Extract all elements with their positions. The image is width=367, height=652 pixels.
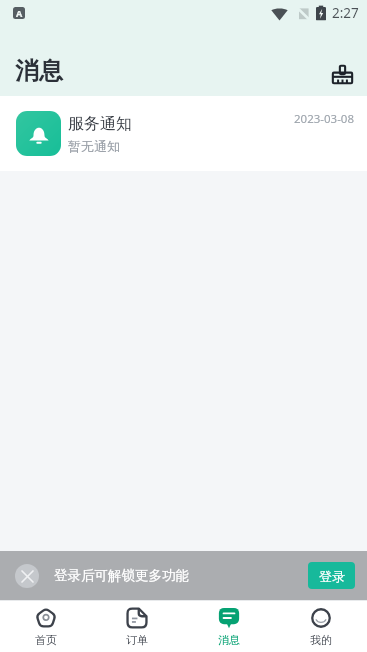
- button[interactable]: 登录: [308, 562, 355, 589]
- button[interactable]: 消息: [183, 601, 275, 652]
- button[interactable]: Clear messages: [325, 57, 359, 91]
- button[interactable]: 我的: [275, 601, 367, 652]
- staticText: 登录: [319, 568, 345, 584]
- staticText: 2:27: [332, 4, 359, 22]
- staticText: 登录后可解锁更多功能: [54, 567, 189, 584]
- staticText: 首页: [35, 633, 57, 647]
- staticText: 订单: [126, 633, 148, 647]
- staticText: A: [16, 7, 23, 19]
- staticText: 消息: [218, 633, 240, 647]
- staticText: 暂无通知: [68, 138, 120, 154]
- staticText: 我的: [310, 633, 332, 647]
- staticText: 消息: [15, 56, 63, 86]
- button[interactable]: 首页: [0, 601, 91, 652]
- button[interactable]: 订单: [91, 601, 183, 652]
- button[interactable]: Close: [15, 564, 39, 588]
- button[interactable]: 服务通知: [0, 96, 367, 171]
- staticText: 2023-03-08: [294, 111, 355, 127]
- staticText: 服务通知: [68, 114, 132, 134]
